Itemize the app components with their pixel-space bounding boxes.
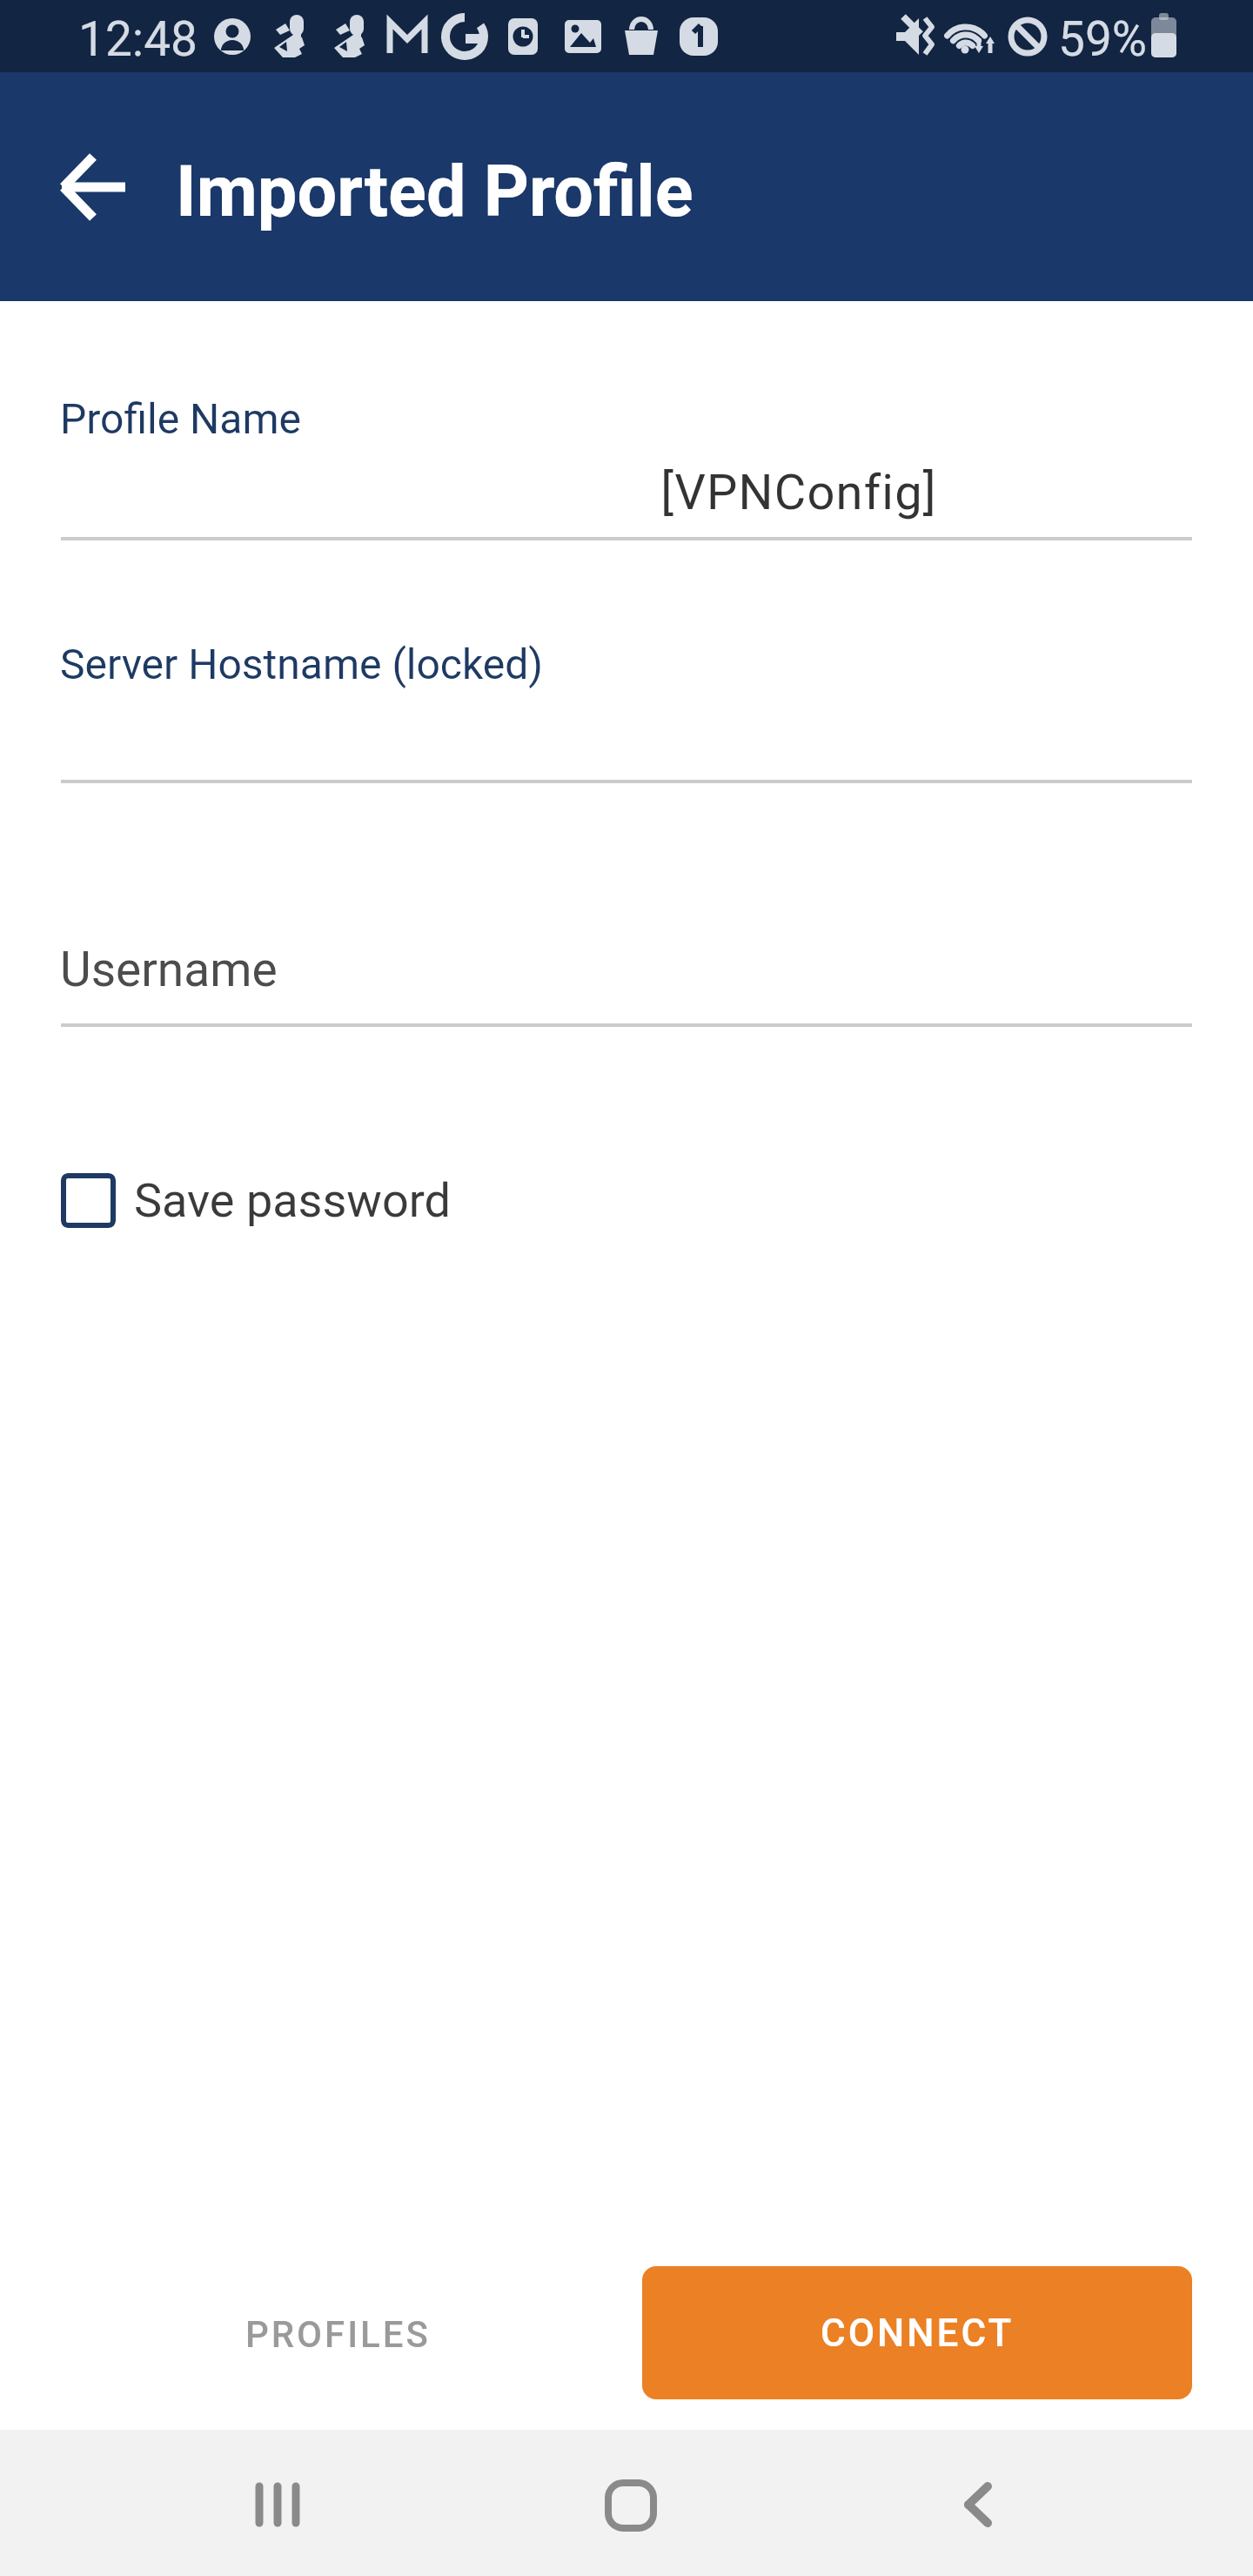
staticText: Username (60, 942, 278, 997)
button[interactable]: Server Hostname (locked) (61, 614, 1192, 782)
staticText: PROFILES (245, 2313, 431, 2356)
staticText: Save password (134, 1173, 451, 1228)
staticText: CONNECT (821, 2311, 1015, 2356)
button[interactable]: Home (560, 2433, 700, 2573)
staticText: Imported Profile (176, 151, 694, 233)
button[interactable]: Save password (61, 1173, 451, 1228)
button[interactable]: Profile Name (61, 371, 1192, 540)
staticText: 59% (1058, 11, 1148, 67)
staticText: Profile Name (60, 394, 301, 443)
button[interactable]: Recent apps (209, 2433, 348, 2573)
staticText: Server Hostname (locked) (60, 640, 544, 688)
staticText: 12:48 (78, 11, 198, 67)
staticText: [VPNConfig] (405, 464, 1192, 521)
button[interactable]: Back (909, 2433, 1049, 2573)
button[interactable]: PROFILES (190, 2268, 486, 2401)
button[interactable]: Navigate up (25, 117, 140, 231)
button[interactable]: Username (61, 910, 1192, 1026)
button[interactable]: CONNECT (642, 2266, 1192, 2399)
